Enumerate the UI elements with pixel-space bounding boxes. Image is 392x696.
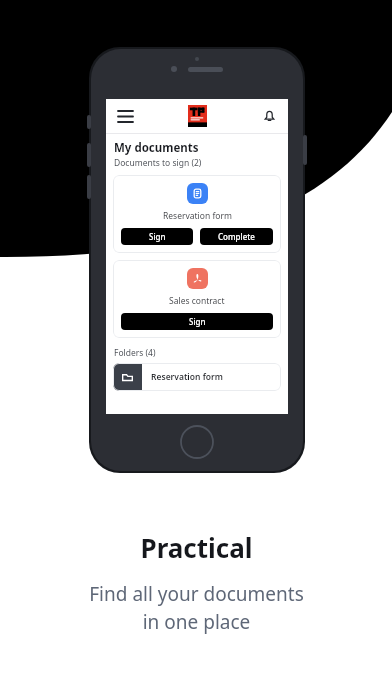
staticText: Complete bbox=[218, 231, 255, 242]
staticText: Practical bbox=[140, 530, 253, 565]
button[interactable]: Sign bbox=[121, 228, 193, 245]
staticText: My documents bbox=[114, 140, 199, 156]
button[interactable]: Complete bbox=[200, 228, 273, 245]
staticText: Folders (4) bbox=[114, 347, 156, 359]
staticText: Documents to sign (2) bbox=[114, 157, 202, 169]
staticText: Reservation form bbox=[151, 371, 223, 383]
button[interactable]: Open navigation menu bbox=[114, 105, 136, 127]
staticText: Find all your documents in one place bbox=[89, 581, 304, 635]
button[interactable]: Sign bbox=[121, 313, 273, 330]
button[interactable]: Notifications bbox=[258, 105, 280, 127]
staticText: Sales contract bbox=[169, 295, 225, 307]
staticText: Reservation form bbox=[163, 210, 232, 222]
staticText: Sign bbox=[149, 231, 166, 242]
staticText: Sign bbox=[189, 316, 206, 327]
button[interactable]: Reservation form bbox=[113, 363, 281, 391]
